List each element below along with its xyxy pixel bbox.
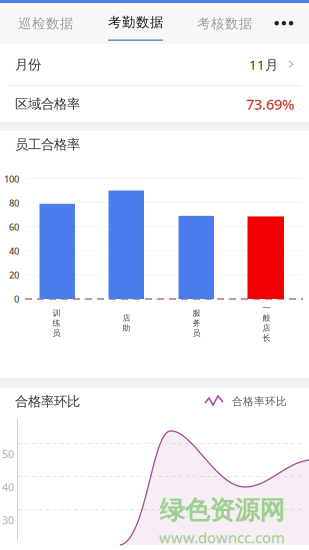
staticText: 40 [2, 480, 14, 494]
staticText: www.downcc.com [159, 528, 285, 547]
staticText: 长 [262, 333, 270, 343]
staticText: 店 [262, 323, 270, 333]
staticText: 73.69% [246, 94, 294, 114]
staticText: 月份 [15, 56, 41, 73]
staticText: 训 [52, 308, 60, 318]
staticText: 练 [52, 318, 60, 328]
staticText: 60 [9, 221, 19, 233]
staticText: 考勤数据 [108, 14, 163, 30]
staticText: 员工合格率 [15, 136, 80, 153]
button[interactable]: 月份 [0, 44, 309, 85]
staticText: 区域合格率 [15, 96, 80, 112]
button[interactable]: 巡检数据 [0, 3, 91, 44]
staticText: 合格率环比 [15, 393, 80, 410]
staticText: 合格率环比 [232, 395, 287, 408]
staticText: 40 [9, 245, 19, 257]
staticText: 50 [2, 447, 14, 461]
staticText: 80 [9, 197, 19, 209]
staticText: 服 [192, 308, 200, 318]
staticText: 务 [192, 318, 200, 328]
staticText: 巡检数据 [18, 15, 73, 32]
staticText: 员 [52, 328, 60, 338]
staticText: 100 [4, 173, 19, 185]
staticText: 一 [262, 303, 270, 313]
staticText: 店 [122, 313, 130, 323]
staticText: 般 [262, 313, 270, 323]
staticText: 20 [9, 269, 19, 281]
staticText: 考核数据 [197, 15, 252, 32]
staticText: 11月 [249, 56, 278, 73]
staticText: 绿色资源网 [159, 495, 284, 526]
staticText: 助 [122, 323, 130, 333]
button[interactable]: 考勤数据 [91, 3, 180, 44]
button[interactable]: More options [269, 3, 299, 44]
staticText: 0 [14, 293, 19, 305]
button[interactable]: 考核数据 [180, 3, 269, 44]
staticText: 30 [2, 513, 14, 527]
staticText: 员 [192, 328, 200, 338]
